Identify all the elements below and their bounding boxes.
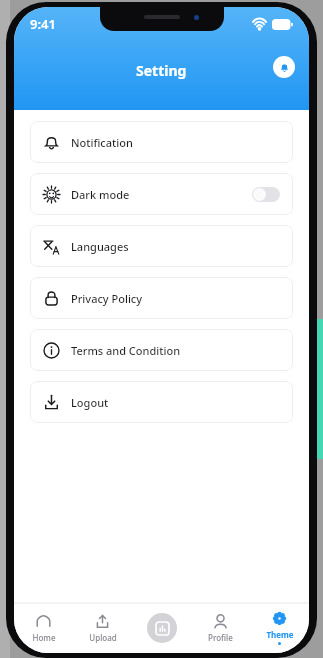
staticText: Profile <box>208 632 233 643</box>
staticText: 9:41 <box>30 15 56 33</box>
staticText: Dark mode <box>71 187 130 202</box>
button[interactable]: Home <box>14 603 73 653</box>
staticText: Home <box>32 632 56 643</box>
staticText: Upload <box>89 632 117 643</box>
button[interactable]: Dark mode toggle <box>252 187 280 202</box>
button[interactable]: Dark mode <box>30 173 293 215</box>
button[interactable]: Notifications <box>273 56 295 78</box>
button[interactable]: Languages <box>30 225 293 267</box>
button[interactable]: Theme <box>250 603 309 653</box>
staticText: Theme <box>266 629 294 640</box>
button[interactable]: Stats <box>147 613 177 643</box>
staticText: Terms and Condition <box>71 343 181 358</box>
staticText: Languages <box>71 239 129 254</box>
button[interactable]: Privacy Policy <box>30 277 293 319</box>
button[interactable]: Terms and Condition <box>30 329 293 371</box>
staticText: Privacy Policy <box>71 291 143 306</box>
button[interactable]: Profile <box>191 603 250 653</box>
staticText: Notification <box>71 135 133 150</box>
staticText: Setting <box>136 61 187 80</box>
staticText: Logout <box>71 395 109 410</box>
button[interactable]: Logout <box>30 381 293 423</box>
button[interactable]: Notification <box>30 121 293 163</box>
button[interactable]: Upload <box>73 603 132 653</box>
